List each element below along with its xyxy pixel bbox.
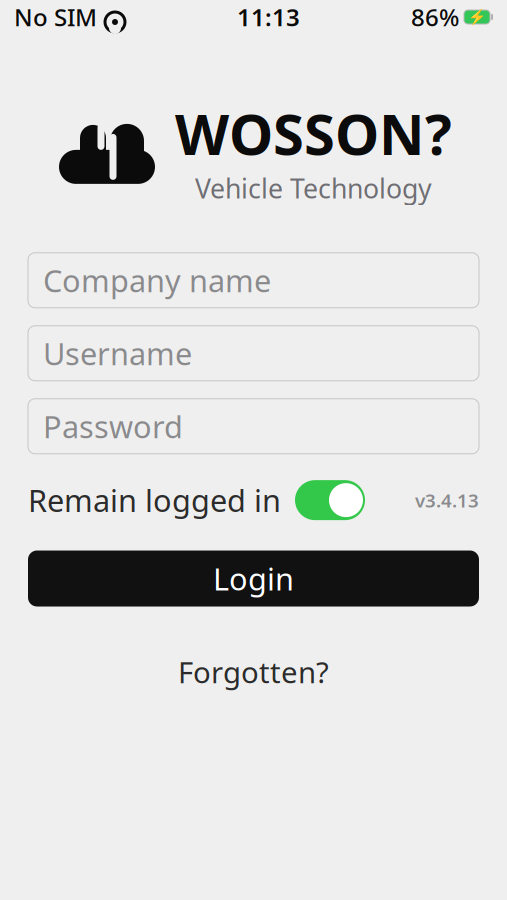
- button[interactable]: Login: [28, 550, 479, 606]
- button[interactable]: Company name: [28, 253, 479, 308]
- button[interactable]: Password: [28, 399, 479, 454]
- staticText: Password: [43, 406, 183, 447]
- staticText: WOSSON?: [175, 96, 452, 170]
- staticText: Username: [43, 333, 192, 374]
- staticText: Login: [213, 558, 294, 599]
- button[interactable]: Forgotten?: [160, 644, 347, 699]
- staticText: No SIM: [14, 1, 97, 33]
- staticText: 86%: [411, 1, 459, 33]
- button[interactable]: Remain logged in: [28, 480, 365, 520]
- staticText: ⚡: [468, 9, 486, 25]
- staticText: Vehicle Technology: [195, 170, 432, 206]
- button[interactable]: Username: [28, 326, 479, 381]
- staticText: Forgotten?: [178, 652, 329, 691]
- staticText: v3.4.13: [415, 488, 479, 512]
- staticText: 11:13: [237, 1, 300, 33]
- staticText: Remain logged in: [28, 480, 281, 520]
- staticText: Company name: [43, 260, 271, 301]
